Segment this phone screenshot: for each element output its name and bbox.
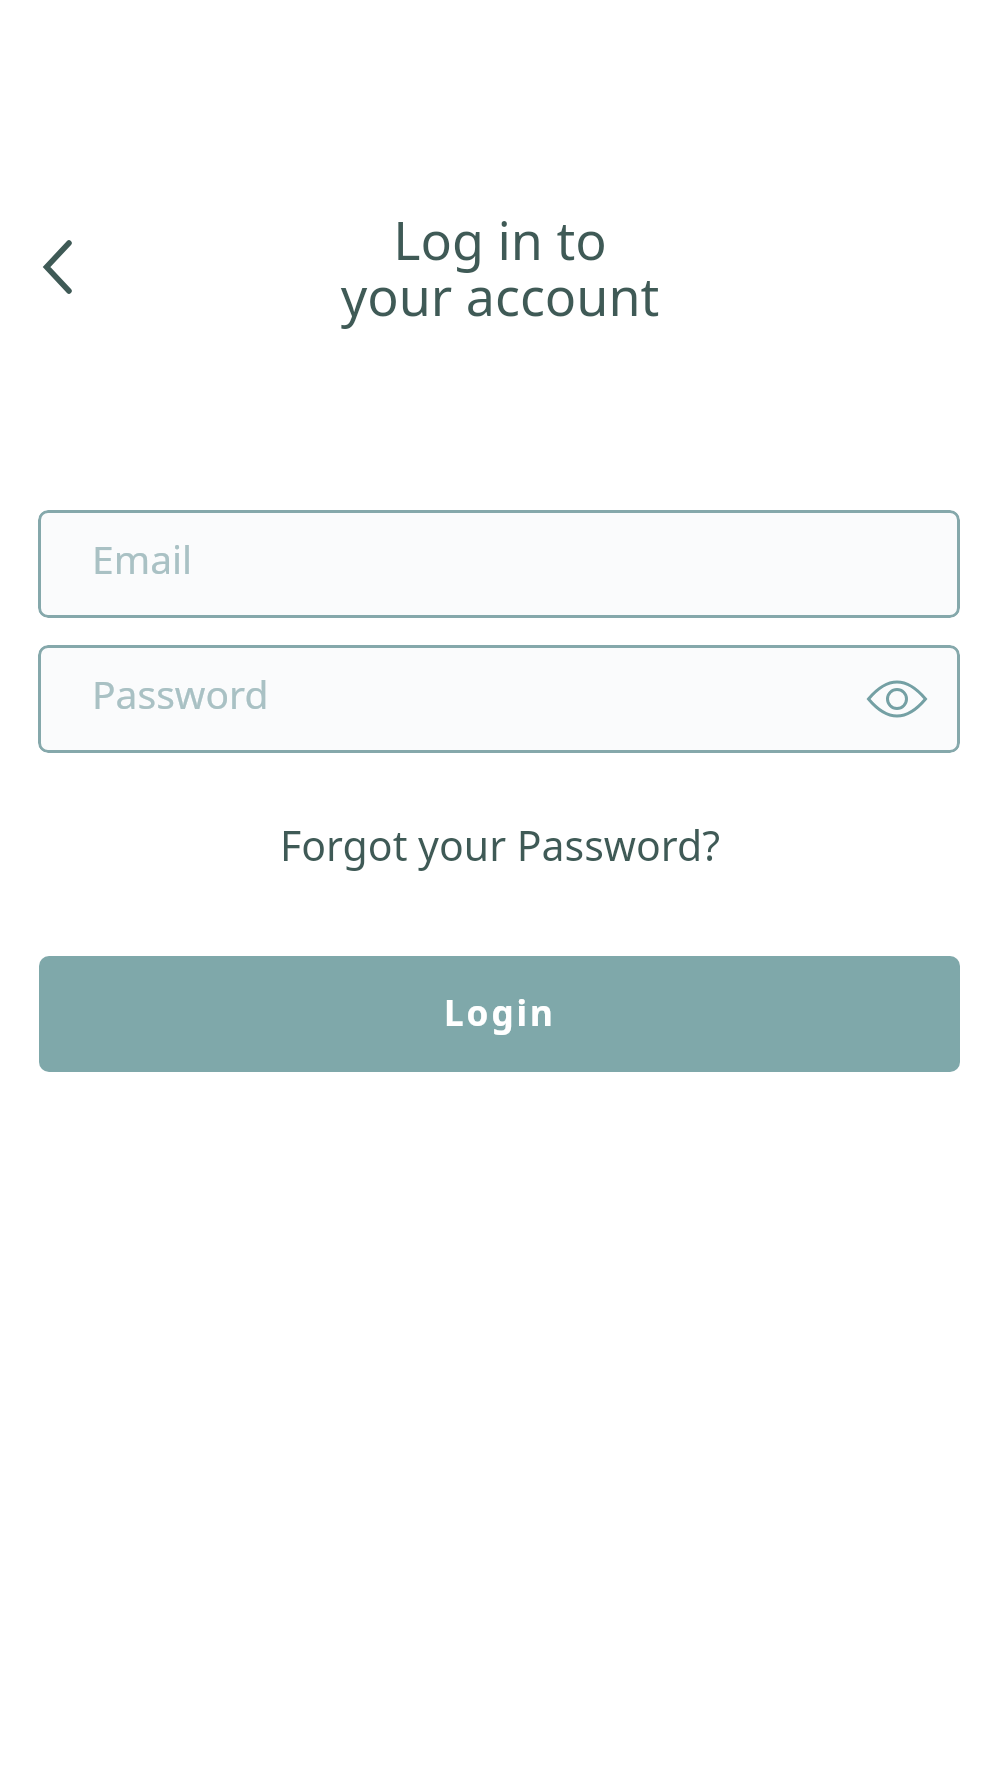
staticText: Login (444, 989, 556, 1037)
button[interactable]: Password (38, 645, 960, 753)
staticText: your account (0, 260, 1000, 331)
staticText: Email (92, 532, 193, 585)
staticText: Password (92, 667, 269, 720)
button[interactable]: Forgot your Password? (0, 817, 1000, 873)
button[interactable]: Login (39, 956, 960, 1072)
button[interactable] (867, 679, 927, 719)
button[interactable] (28, 222, 92, 312)
button[interactable]: Email (38, 510, 960, 618)
staticText: Log in to (0, 204, 1000, 275)
